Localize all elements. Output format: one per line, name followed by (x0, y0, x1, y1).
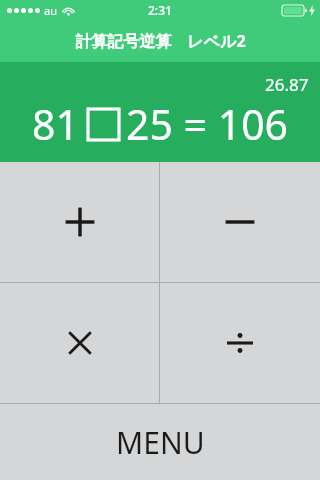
staticText: MENU (116, 422, 205, 463)
staticText: 計算記号逆算 レベル2 (75, 30, 246, 52)
button[interactable]: Multiply (0, 283, 159, 403)
button[interactable]: Minus (160, 162, 320, 282)
button[interactable]: Divide (160, 283, 320, 403)
button[interactable]: MENU (0, 404, 320, 480)
staticText: 25 = 106 (126, 96, 289, 152)
staticText: 26.87 (265, 73, 309, 96)
staticText: 2:31 (148, 2, 172, 18)
button[interactable]: Plus (0, 162, 159, 282)
staticText: 81 (32, 96, 79, 152)
staticText: au (44, 3, 57, 18)
